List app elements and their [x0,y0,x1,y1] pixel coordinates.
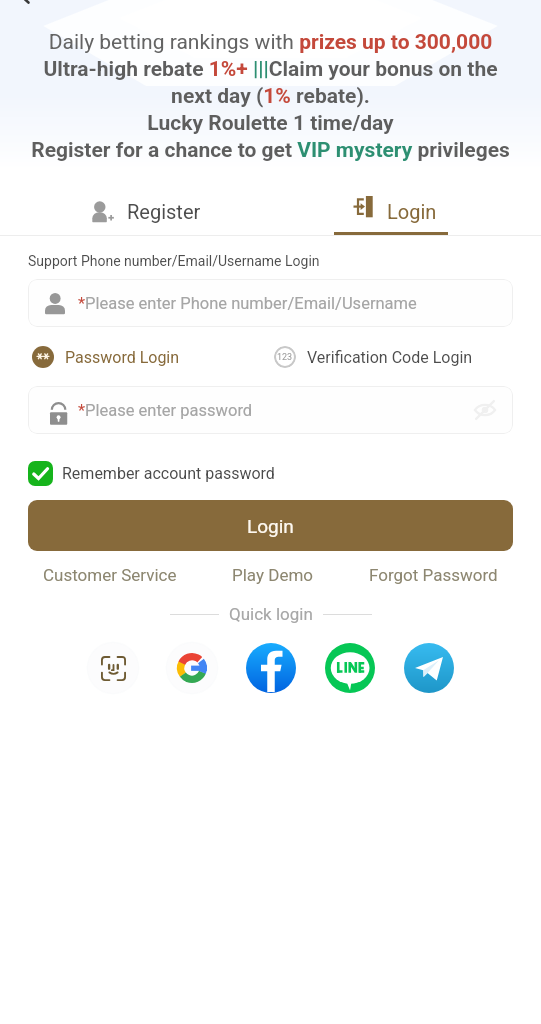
button[interactable]: Play Demo [232,562,314,588]
button[interactable]: Customer Service [43,562,177,588]
button[interactable]: *Please enter password [28,386,513,434]
staticText: Play Demo [232,565,314,585]
staticText: *Please enter password [78,401,253,420]
button[interactable]: LINE login [323,641,377,695]
button[interactable]: Register [0,186,270,236]
button[interactable]: Remember account password [28,455,275,491]
button[interactable]: Show password [473,398,497,422]
button[interactable]: Telegram login [402,641,456,695]
staticText: Forgot Password [369,565,498,585]
staticText: Register [127,200,201,223]
staticText: Support Phone number/Email/Username Logi… [28,253,320,269]
button[interactable]: Forgot Password [369,562,498,588]
staticText: Quick login [229,604,313,624]
button[interactable]: Login [28,500,513,551]
button[interactable]: 123 [274,346,473,368]
button[interactable]: Face ID login [86,641,140,695]
button[interactable]: Google login [165,641,219,695]
staticText: Daily betting rankings with prizes up to… [25,27,516,162]
button[interactable]: Login [270,186,541,236]
staticText: Login [247,515,294,537]
button[interactable]: *Please enter Phone number/Email/Usernam… [28,279,513,327]
staticText: *Please enter Phone number/Email/Usernam… [78,294,417,313]
staticText: Login [387,200,437,223]
staticText: Remember account password [62,464,275,483]
staticText: Password Login [65,348,180,367]
staticText: 123 [277,352,293,363]
button[interactable]: Password Login [32,346,180,368]
button[interactable]: Back [6,0,40,10]
staticText: Verification Code Login [307,348,473,367]
staticText: Customer Service [43,565,177,585]
button[interactable]: Facebook login [244,641,298,695]
